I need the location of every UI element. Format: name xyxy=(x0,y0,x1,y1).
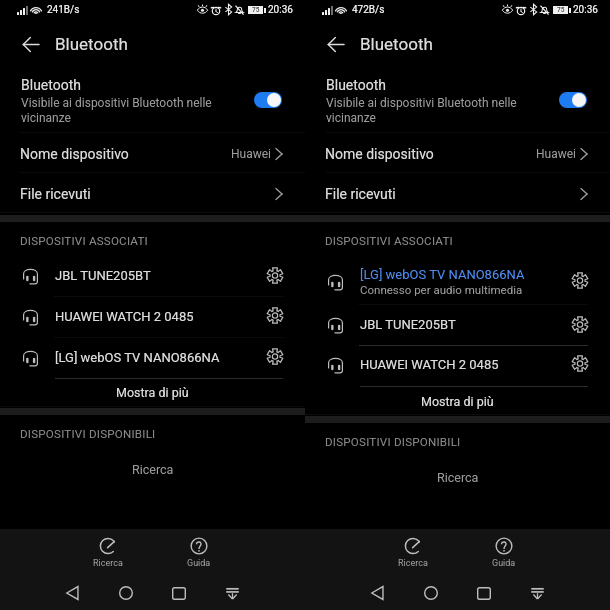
staticText: Guida xyxy=(187,558,211,569)
button[interactable]: Impostazioni dispositivo xyxy=(263,345,286,368)
staticText: File ricevuti xyxy=(325,186,396,202)
button[interactable] xyxy=(0,174,305,212)
button[interactable]: Indietro xyxy=(53,574,91,610)
staticText: DISPOSITIVI DISPONIBILI xyxy=(20,427,156,441)
staticText: JBL TUNE205BT xyxy=(55,268,151,283)
button[interactable]: Attiva Bluetooth xyxy=(559,92,587,108)
staticText: [LG] webOS TV NANO866NA xyxy=(55,350,220,365)
button[interactable]: Impostazioni dispositivo xyxy=(263,264,286,287)
staticText: File ricevuti xyxy=(20,186,91,202)
button[interactable]: Home xyxy=(107,574,145,610)
button[interactable]: Home xyxy=(412,574,450,610)
staticText: Ricerca xyxy=(437,470,479,485)
button[interactable] xyxy=(0,70,305,125)
staticText: Visibile ai dispositivi Bluetooth nelle xyxy=(326,96,517,110)
staticText: Mostra di più xyxy=(116,385,189,400)
staticText: vicinanze xyxy=(21,111,71,125)
button[interactable] xyxy=(305,305,610,345)
button[interactable]: Recenti xyxy=(465,574,503,610)
staticText: Nome dispositivo xyxy=(325,146,434,162)
staticText: Bluetooth xyxy=(21,77,81,93)
button[interactable] xyxy=(305,259,610,303)
button[interactable] xyxy=(383,529,443,572)
staticText: 75 xyxy=(557,6,565,14)
button[interactable] xyxy=(0,296,305,336)
staticText: Ricerca xyxy=(93,558,123,569)
staticText: Bluetooth xyxy=(326,77,386,93)
staticText: Ricerca xyxy=(398,558,428,569)
staticText: DISPOSITIVI ASSOCIATI xyxy=(325,234,453,248)
button[interactable] xyxy=(0,378,305,406)
button[interactable] xyxy=(0,134,305,172)
staticText: Ricerca xyxy=(132,462,174,477)
staticText: Connesso per audio multimedia xyxy=(360,283,523,296)
button[interactable]: Attiva Bluetooth xyxy=(254,92,282,108)
staticText: [LG] webOS TV NANO866NA xyxy=(360,267,525,282)
button[interactable]: Notifiche xyxy=(213,574,251,610)
staticText: Huawei xyxy=(231,147,272,161)
staticText: DISPOSITIVI ASSOCIATI xyxy=(20,234,148,248)
staticText: Nome dispositivo xyxy=(20,146,129,162)
button[interactable] xyxy=(305,174,610,212)
button[interactable]: Impostazioni dispositivo xyxy=(263,304,286,327)
button[interactable]: Indietro xyxy=(14,28,47,61)
staticText: HUAWEI WATCH 2 0485 xyxy=(360,357,499,372)
staticText: 472B/s xyxy=(352,4,385,16)
button[interactable] xyxy=(305,70,610,125)
button[interactable] xyxy=(0,337,305,377)
button[interactable]: Impostazioni dispositivo xyxy=(568,269,591,292)
staticText: Huawei xyxy=(536,147,577,161)
button[interactable] xyxy=(474,529,534,572)
staticText: vicinanze xyxy=(326,111,376,125)
button[interactable]: Indietro xyxy=(319,28,352,61)
button[interactable] xyxy=(78,529,138,572)
staticText: 20:36 xyxy=(268,4,293,16)
button[interactable]: Indietro xyxy=(358,574,396,610)
staticText: Bluetooth xyxy=(55,34,128,54)
staticText: JBL TUNE205BT xyxy=(360,317,456,332)
staticText: 20:36 xyxy=(573,4,598,16)
staticText: 75 xyxy=(252,6,260,14)
button[interactable] xyxy=(305,387,610,415)
button[interactable] xyxy=(0,256,305,296)
staticText: 241B/s xyxy=(47,4,80,16)
staticText: HUAWEI WATCH 2 0485 xyxy=(55,309,194,324)
button[interactable] xyxy=(305,134,610,172)
button[interactable]: Notifiche xyxy=(518,574,556,610)
staticText: Mostra di più xyxy=(421,394,494,409)
button[interactable] xyxy=(169,529,229,572)
staticText: Guida xyxy=(492,558,516,569)
button[interactable]: Impostazioni dispositivo xyxy=(568,352,591,375)
button[interactable] xyxy=(305,344,610,384)
staticText: Bluetooth xyxy=(360,34,433,54)
staticText: Visibile ai dispositivi Bluetooth nelle xyxy=(21,96,212,110)
button[interactable]: Impostazioni dispositivo xyxy=(568,313,591,336)
button[interactable]: Recenti xyxy=(160,574,198,610)
staticText: DISPOSITIVI DISPONIBILI xyxy=(325,435,461,449)
